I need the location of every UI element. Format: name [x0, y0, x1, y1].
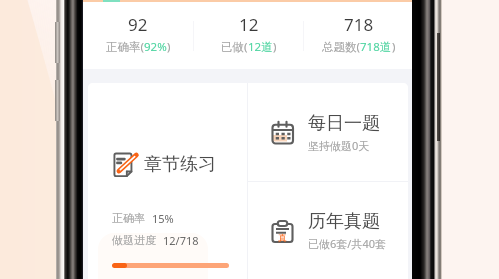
staticText: )	[273, 39, 277, 55]
staticText: 正确率	[112, 211, 145, 225]
staticText: 718道	[360, 39, 392, 55]
staticText: 章节练习	[144, 153, 216, 176]
staticText: 12/718	[163, 233, 199, 248]
staticText: 718	[344, 13, 374, 36]
staticText: 92%	[144, 39, 167, 55]
staticText: 总题数(	[322, 39, 360, 55]
button[interactable]: 12	[194, 2, 303, 69]
staticText: 历年真题	[308, 210, 380, 233]
staticText: )	[392, 39, 396, 55]
staticText: 12道	[248, 39, 273, 55]
button[interactable]: 历年真题	[248, 182, 408, 279]
button[interactable]: 92	[83, 2, 193, 69]
staticText: 每日一题	[308, 112, 380, 135]
staticText: 做题进度	[112, 233, 156, 247]
staticText: 12	[239, 13, 259, 36]
other: 章节练习	[112, 151, 139, 178]
other: 每日一题	[270, 120, 295, 145]
staticText: 坚持做题0天	[308, 138, 370, 153]
staticText: 真	[278, 233, 287, 244]
staticText: 正确率(	[106, 39, 144, 55]
button[interactable]: 每日一题	[248, 83, 408, 181]
staticText: 已做(	[221, 39, 248, 55]
staticText: 已做6套/共40套	[308, 236, 386, 251]
staticText: 92	[128, 13, 148, 36]
button[interactable]: 718	[304, 2, 413, 69]
staticText: )	[167, 39, 171, 55]
button[interactable]: 章节练习	[88, 83, 247, 279]
staticText: 15%	[152, 211, 174, 226]
other: 历年真题	[270, 218, 295, 243]
